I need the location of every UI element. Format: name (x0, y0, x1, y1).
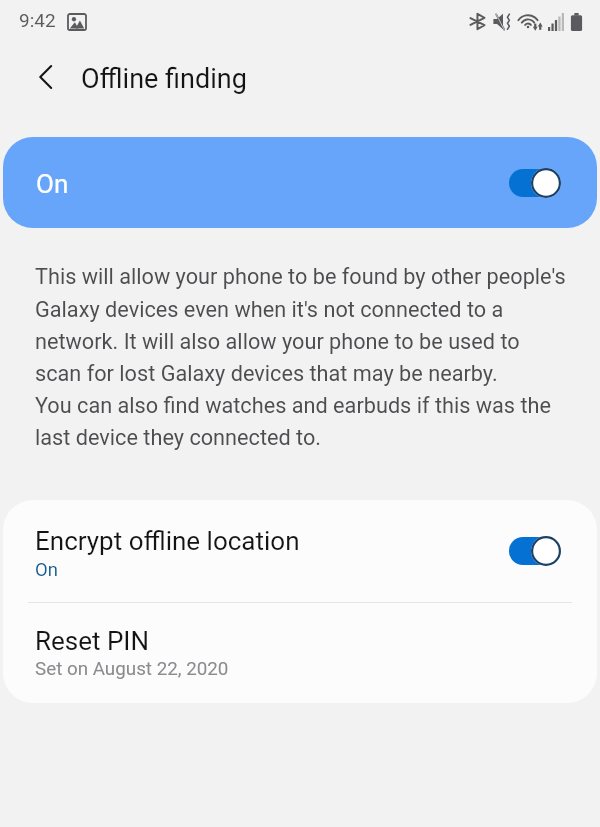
button[interactable]: Turn off encrypt offline location (509, 535, 562, 567)
staticText: 9:42 (19, 9, 56, 31)
button[interactable]: Turn off offline finding (509, 167, 562, 199)
staticText: Reset PIN (35, 626, 149, 656)
staticText: On (36, 169, 69, 199)
button[interactable]: Encrypt offline location (3, 500, 597, 602)
staticText: On (35, 559, 58, 581)
staticText: Set on August 22, 2020 (35, 658, 229, 680)
button[interactable]: Reset PIN (3, 603, 597, 703)
button[interactable]: On (3, 137, 597, 228)
staticText: This will allow your phone to be found b… (35, 264, 570, 450)
staticText: Offline finding (81, 63, 247, 95)
button[interactable]: Navigate up (18, 47, 73, 107)
staticText: Encrypt offline location (35, 526, 300, 556)
